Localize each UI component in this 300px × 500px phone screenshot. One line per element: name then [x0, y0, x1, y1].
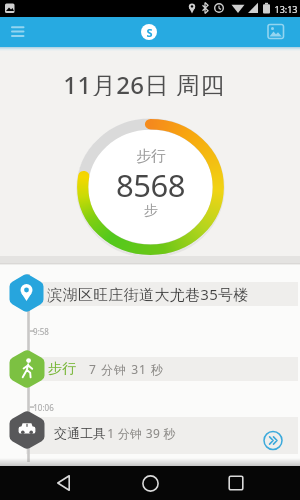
button[interactable]	[26, 357, 298, 381]
staticText: 步行	[48, 360, 76, 378]
button[interactable]	[258, 17, 300, 47]
staticText: 步行	[136, 147, 166, 166]
staticText: 步	[144, 202, 158, 220]
staticText: 1 分钟 39 秒	[107, 425, 176, 441]
button[interactable]	[128, 466, 172, 500]
button[interactable]	[128, 17, 172, 47]
button[interactable]	[0, 17, 44, 47]
staticText: 交通工具	[54, 425, 106, 441]
button[interactable]	[26, 282, 298, 306]
staticText: S	[146, 25, 153, 40]
staticText: 11月26日 周四	[63, 68, 225, 96]
button[interactable]	[214, 466, 258, 500]
button[interactable]	[26, 417, 298, 454]
staticText: 8568	[116, 164, 185, 202]
staticText: 7 分钟 31 秒	[89, 361, 164, 377]
button[interactable]	[262, 429, 284, 451]
staticText: 10:06	[33, 402, 54, 413]
button[interactable]	[42, 466, 86, 500]
staticText: 13:13	[274, 3, 298, 15]
staticText: 滨湖区旺庄街道大尤巷35号楼	[47, 284, 249, 304]
staticText: 9:58	[33, 326, 49, 337]
